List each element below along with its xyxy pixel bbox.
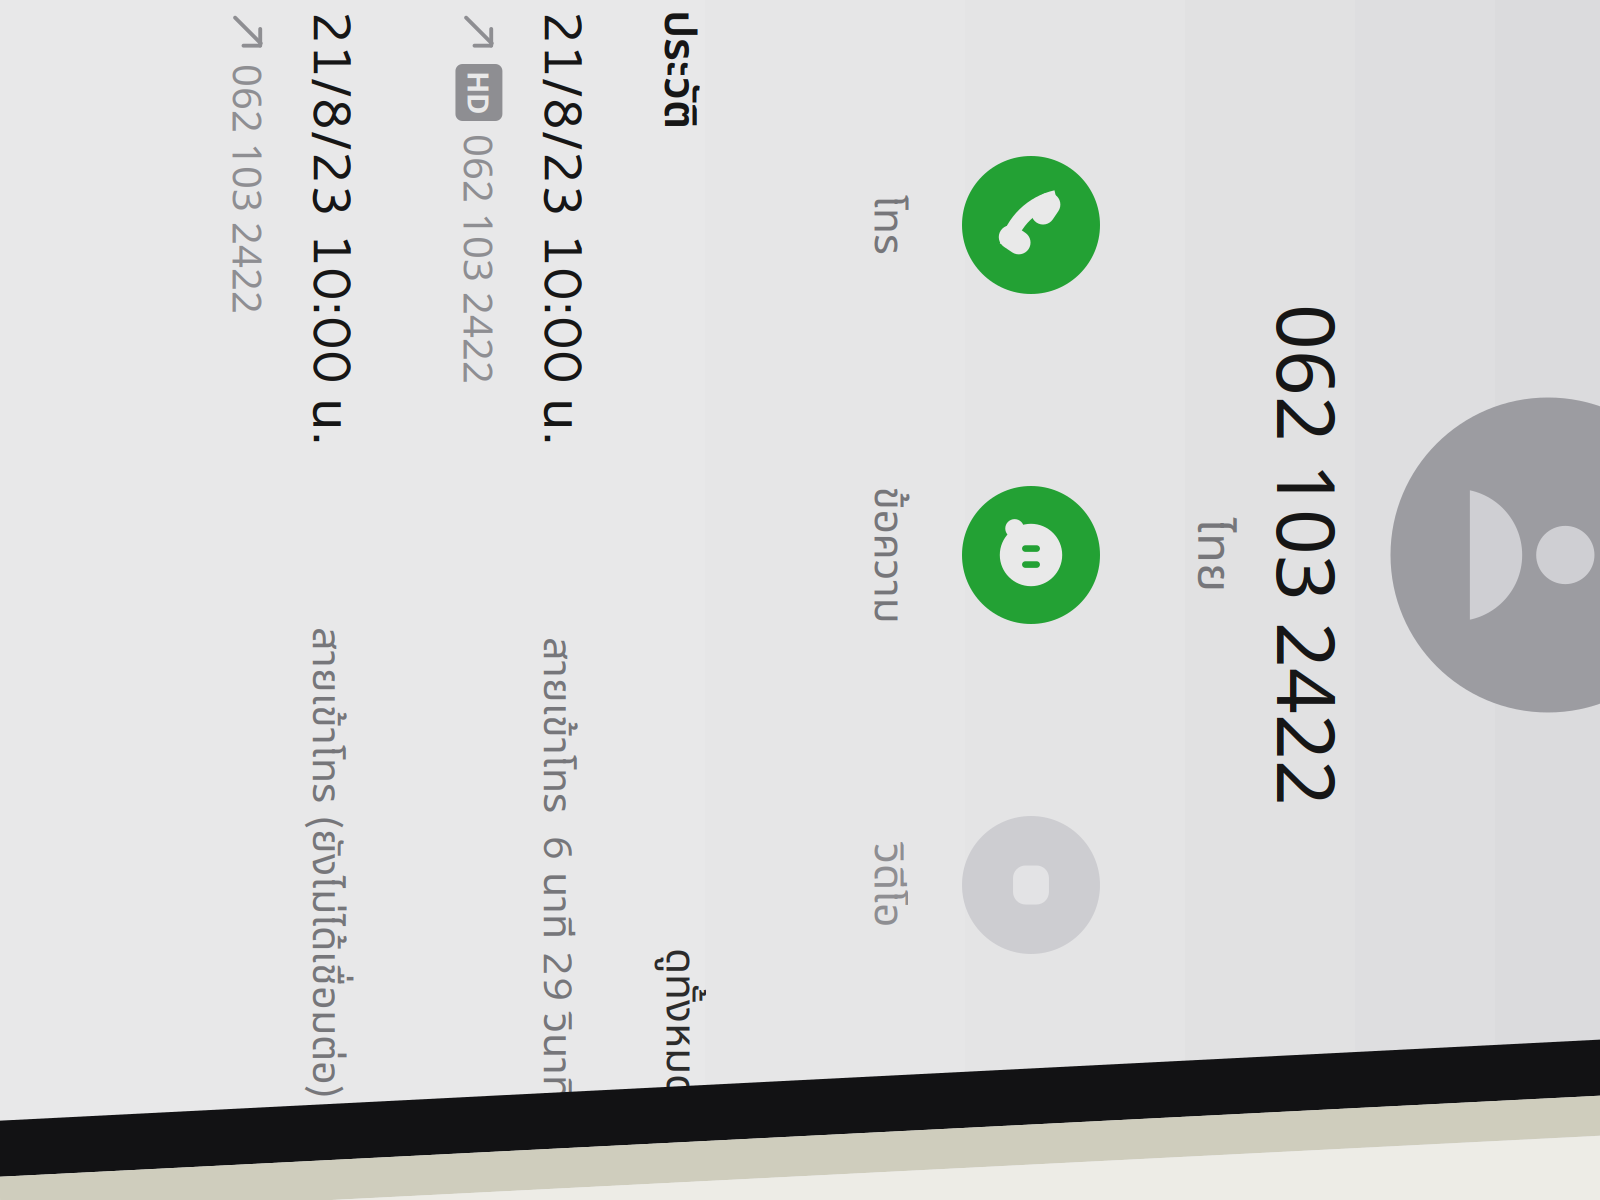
- staticText: ข้อความ: [866, 570, 1003, 628]
- staticText: 21/8/23 10:00 น.: [390, 887, 826, 962]
- staticText: วิดีโอ: [1223, 570, 1307, 628]
- button[interactable]: 21/8/23 10:00 น.: [290, 879, 1580, 1110]
- staticText: สายเข้าโทร (ยังไม่ได้เชื่อมต่อ): [1007, 1132, 1480, 1190]
- staticText: สายเข้าโทร 6 นาที 29 วินาที: [1017, 901, 1480, 959]
- staticText: 062 103 2422: [514, 984, 764, 1038]
- staticText: 062 103 2422: [684, 129, 1186, 235]
- button[interactable]: วิดีโอ: [1100, 390, 1430, 630]
- button[interactable]: ข้อความ: [770, 390, 1100, 630]
- button[interactable]: ดูทั้งหมด: [1328, 778, 1480, 836]
- staticText: ดูทั้งหมด: [1328, 778, 1480, 836]
- staticText: ไทย: [898, 239, 972, 307]
- button[interactable]: 21/8/23 10:00 น.: [290, 1110, 1580, 1200]
- button[interactable]: โทร: [440, 390, 770, 630]
- staticText: 21/8/23 10:00 น.: [390, 1118, 826, 1193]
